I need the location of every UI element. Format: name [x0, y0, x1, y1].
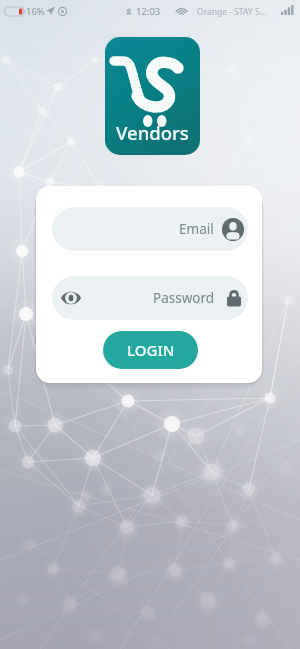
staticText: Email [179, 220, 214, 238]
staticText: LOGIN [127, 340, 175, 360]
staticText: Vendors [116, 120, 189, 145]
button[interactable]: Email [52, 207, 248, 251]
staticText: Orange - STAY S... [197, 6, 267, 18]
button[interactable]: Show password [59, 286, 83, 310]
staticText: Password [153, 289, 215, 307]
button[interactable]: LOGIN [103, 331, 198, 369]
button[interactable]: Show password [52, 276, 248, 320]
staticText: 12:03 [136, 5, 161, 18]
staticText: 16% [26, 5, 45, 18]
